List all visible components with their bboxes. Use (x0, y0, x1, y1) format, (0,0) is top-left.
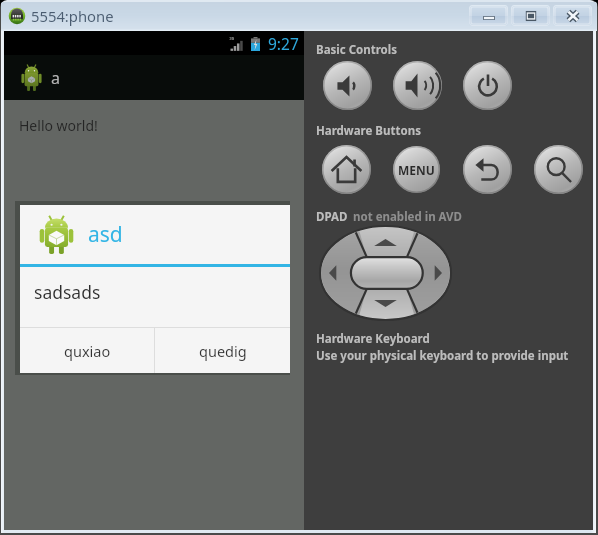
staticText: sadsads (34, 280, 101, 304)
staticText: a (51, 67, 60, 89)
staticText: MENU (398, 162, 435, 178)
button[interactable]: quxiao (20, 328, 154, 373)
staticText: asd (88, 220, 123, 249)
button[interactable]: Minimize (469, 5, 508, 26)
staticText: 5554:phone (31, 6, 114, 26)
button[interactable]: quedig (155, 328, 290, 373)
staticText: 9:27 (268, 33, 299, 54)
staticText: Basic Controls (316, 42, 398, 58)
staticText: Hello world! (19, 116, 98, 135)
staticText: quedig (199, 341, 247, 361)
button[interactable]: Volume down (323, 61, 372, 110)
staticText: Hardware Buttons (316, 123, 421, 139)
button[interactable]: Maximize (511, 5, 550, 26)
button[interactable]: Search (534, 145, 583, 194)
button[interactable]: Power (463, 61, 512, 110)
button[interactable]: MENU (393, 146, 440, 193)
staticText: DPAD (316, 209, 348, 225)
button[interactable]: D-pad (319, 225, 452, 321)
button[interactable]: Close (553, 5, 592, 26)
button[interactable]: Volume up (393, 61, 442, 110)
button[interactable]: Home (322, 145, 371, 194)
staticText: Use your physical keyboard to provide in… (316, 348, 569, 364)
staticText: Hardware Keyboard (316, 331, 430, 347)
staticText: not enabled in AVD (353, 209, 462, 225)
button[interactable]: Back (463, 145, 512, 194)
staticText: quxiao (64, 341, 111, 361)
